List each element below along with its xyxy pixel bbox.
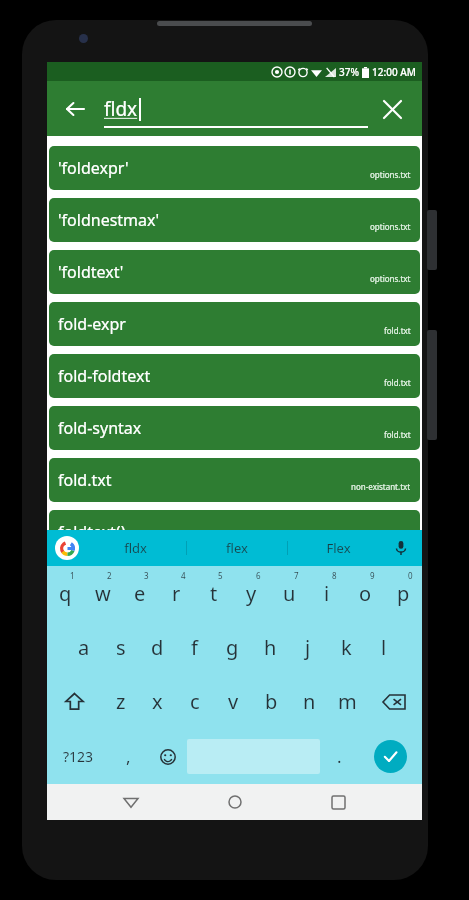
- staticText: k: [341, 634, 352, 661]
- button[interactable]: 3: [121, 566, 158, 620]
- button[interactable]: Backspace: [366, 674, 422, 729]
- button[interactable]: v: [214, 674, 252, 729]
- staticText: 12:00 AM: [372, 65, 416, 79]
- staticText: t: [210, 580, 218, 607]
- staticText: x: [152, 688, 163, 715]
- staticText: h: [264, 634, 277, 661]
- button[interactable]: fold.txt: [49, 458, 420, 502]
- staticText: c: [190, 688, 200, 715]
- staticText: f: [191, 634, 198, 661]
- button[interactable]: g: [213, 620, 251, 674]
- button[interactable]: n: [290, 674, 328, 729]
- staticText: 'foldtext': [58, 261, 124, 283]
- staticText: Flex: [326, 539, 351, 557]
- staticText: w: [95, 580, 111, 607]
- staticText: options.txt: [370, 221, 411, 232]
- staticText: z: [116, 688, 126, 715]
- button[interactable]: 0: [384, 566, 422, 620]
- button[interactable]: b: [252, 674, 290, 729]
- button[interactable]: ,: [109, 729, 148, 784]
- button[interactable]: Emoji: [148, 729, 187, 784]
- staticText: fold.txt: [384, 429, 411, 440]
- button[interactable]: Back: [55, 89, 95, 129]
- staticText: foldlevel(): [58, 573, 131, 595]
- button[interactable]: 'foldexpr': [49, 146, 420, 190]
- staticText: ,: [126, 745, 131, 768]
- staticText: fold-foldtext: [58, 365, 151, 387]
- staticText: e: [134, 580, 146, 607]
- button[interactable]: 9: [346, 566, 384, 620]
- button[interactable]: x: [139, 674, 176, 729]
- button[interactable]: k: [327, 620, 365, 674]
- button[interactable]: l: [365, 620, 403, 674]
- staticText: options.txt: [370, 169, 411, 180]
- staticText: fldx: [124, 539, 147, 557]
- button[interactable]: .: [320, 729, 359, 784]
- button[interactable]: Back: [111, 784, 151, 820]
- button[interactable]: flex: [187, 530, 287, 566]
- button[interactable]: Recents: [318, 784, 358, 820]
- staticText: non-existant.txt: [351, 481, 411, 492]
- button[interactable]: 6: [232, 566, 270, 620]
- button[interactable]: z: [102, 674, 139, 729]
- staticText: d: [151, 634, 164, 661]
- button[interactable]: 1: [47, 566, 84, 620]
- staticText: ?123: [63, 747, 94, 766]
- button[interactable]: ?123: [47, 729, 109, 784]
- staticText: eval.txt: [383, 585, 411, 596]
- staticText: flex: [226, 539, 248, 557]
- button[interactable]: 7: [270, 566, 308, 620]
- staticText: j: [305, 634, 311, 661]
- button[interactable]: 4: [158, 566, 195, 620]
- button[interactable]: s: [102, 620, 139, 674]
- button[interactable]: a: [65, 620, 102, 674]
- staticText: 'foldexpr': [58, 157, 129, 179]
- staticText: 4: [181, 570, 186, 581]
- button[interactable]: Voice input: [390, 537, 412, 559]
- button[interactable]: Enter: [374, 740, 407, 773]
- button[interactable]: fold-expr: [49, 302, 420, 346]
- staticText: 1: [70, 570, 75, 581]
- staticText: 7: [294, 570, 299, 581]
- staticText: q: [59, 580, 72, 607]
- staticText: y: [246, 580, 257, 607]
- staticText: eval.txt: [383, 533, 411, 544]
- staticText: m: [338, 688, 357, 715]
- button[interactable]: d: [139, 620, 176, 674]
- button[interactable]: foldtext(): [49, 510, 420, 554]
- button[interactable]: foldlevel(): [49, 562, 420, 606]
- button[interactable]: fldx: [85, 530, 186, 566]
- button[interactable]: c: [176, 674, 214, 729]
- button[interactable]: Home: [215, 784, 255, 820]
- staticText: g: [226, 634, 239, 661]
- staticText: 8: [332, 570, 337, 581]
- staticText: fold.txt: [384, 325, 411, 336]
- button[interactable]: Shift: [47, 674, 102, 729]
- button[interactable]: h: [251, 620, 289, 674]
- staticText: 0: [408, 570, 413, 581]
- staticText: b: [265, 688, 278, 715]
- staticText: fold.txt: [384, 377, 411, 388]
- staticText: i: [324, 580, 330, 607]
- button[interactable]: fold-syntax: [49, 406, 420, 450]
- button[interactable]: fldx: [104, 81, 368, 136]
- button[interactable]: f: [176, 620, 213, 674]
- button[interactable]: fold-foldtext: [49, 354, 420, 398]
- button[interactable]: Clear search: [372, 89, 412, 129]
- staticText: 9: [370, 570, 375, 581]
- button[interactable]: 5: [195, 566, 232, 620]
- staticText: u: [283, 580, 296, 607]
- button[interactable]: 8: [308, 566, 346, 620]
- staticText: fold.txt: [58, 469, 112, 491]
- staticText: 37%: [339, 65, 359, 79]
- button[interactable]: j: [289, 620, 327, 674]
- staticText: foldtext(): [58, 521, 126, 543]
- button[interactable]: 'foldnestmax': [49, 198, 420, 242]
- staticText: a: [78, 634, 90, 661]
- button[interactable]: Google: [55, 536, 79, 560]
- button[interactable]: Flex: [288, 530, 388, 566]
- button[interactable]: 2: [84, 566, 121, 620]
- button[interactable]: 'foldtext': [49, 250, 420, 294]
- button[interactable]: m: [328, 674, 366, 729]
